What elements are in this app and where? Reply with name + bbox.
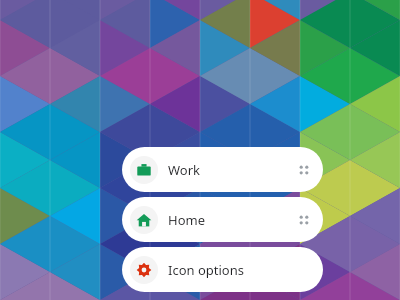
button[interactable]: Work xyxy=(122,147,323,192)
button[interactable]: Home xyxy=(122,197,323,242)
staticText: Icon options xyxy=(168,261,244,279)
staticText: Home xyxy=(168,211,205,229)
button[interactable]: Icon options xyxy=(122,247,323,292)
staticText: Work xyxy=(168,161,201,179)
